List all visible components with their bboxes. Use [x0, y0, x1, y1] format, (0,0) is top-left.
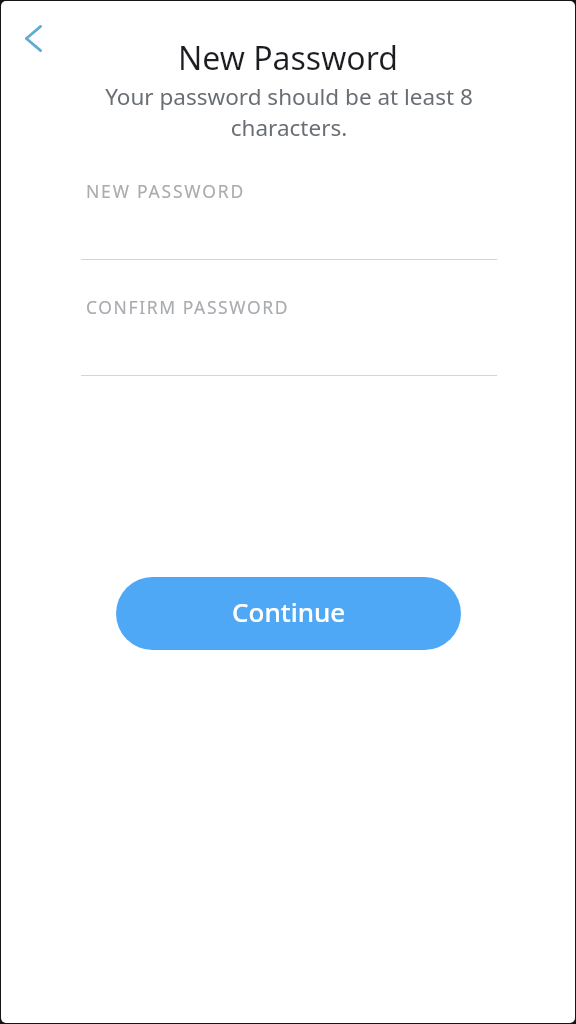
staticText: NEW PASSWORD — [86, 179, 245, 203]
button[interactable] — [81, 173, 497, 260]
button[interactable] — [81, 289, 497, 377]
staticText: Your password should be at least 8 chara… — [99, 81, 479, 143]
staticText: CONFIRM PASSWORD — [86, 295, 290, 319]
button[interactable]: Back — [1, 11, 67, 65]
staticText: Continue — [232, 594, 346, 629]
button[interactable]: Continue — [116, 577, 461, 650]
staticText: New Password — [1, 36, 575, 80]
